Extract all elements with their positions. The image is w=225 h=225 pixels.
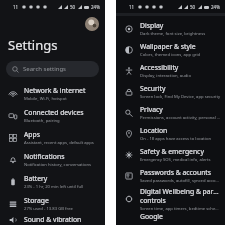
button[interactable]: Accessibility xyxy=(116,60,225,81)
staticText: Connected devices xyxy=(24,108,84,117)
staticText: Notification history, conversations xyxy=(24,162,92,168)
staticText: 11 xyxy=(13,4,19,10)
staticText: Battery xyxy=(24,174,48,183)
button[interactable]: Search settings xyxy=(6,61,99,77)
staticText: Emergency SOS, medical info, alerts xyxy=(140,157,211,163)
button[interactable]: Safety & emergency xyxy=(116,144,225,165)
button[interactable]: Storage xyxy=(0,193,105,214)
staticText: 24% xyxy=(91,4,100,10)
staticText: Accessibility xyxy=(140,63,179,72)
staticText: Network & internet xyxy=(24,86,86,95)
staticText: Search settings xyxy=(23,65,66,73)
button[interactable]: Apps xyxy=(0,127,105,148)
staticText: 24% xyxy=(211,4,220,10)
button[interactable]: Network & internet xyxy=(0,83,105,104)
staticText: Storage xyxy=(24,196,49,205)
staticText: Security xyxy=(140,84,166,93)
staticText: Saved passwords, autofill, synced accoun… xyxy=(140,178,221,184)
staticText: Dark theme, font size, brightness xyxy=(140,31,206,37)
staticText: Notifications xyxy=(24,152,65,161)
staticText: Google xyxy=(140,212,163,221)
staticText: 50 xyxy=(70,4,76,10)
button[interactable]: Connected devices xyxy=(0,105,105,126)
button[interactable]: Wallpaper & style xyxy=(116,39,225,60)
staticText: controls xyxy=(140,196,166,205)
staticText: Mobile, Wi-Fi, hotspot xyxy=(24,96,67,102)
staticText: On - 18 apps have access to location xyxy=(140,136,212,142)
button[interactable]: Digital Wellbeing & parental xyxy=(116,186,225,212)
staticText: 23% - 1 hr, 20 min left until full xyxy=(24,184,84,190)
staticText: Bluetooth, pairing xyxy=(24,118,60,124)
staticText: Digital Wellbeing & parental xyxy=(140,187,221,196)
button[interactable]: Account xyxy=(85,17,99,31)
staticText: 50 xyxy=(190,4,196,10)
button[interactable]: Display xyxy=(116,18,225,39)
staticText: Privacy xyxy=(140,105,163,114)
staticText: Sound & vibration xyxy=(24,215,82,224)
button[interactable]: Notifications xyxy=(0,149,105,170)
staticText: Apps xyxy=(24,130,40,139)
staticText: Screen lock, Find My Device, app securit… xyxy=(140,94,221,100)
staticText: Location xyxy=(140,126,168,135)
staticText: Display xyxy=(140,21,164,30)
button[interactable]: Battery xyxy=(0,171,105,192)
staticText: Permissions, account activity, personal … xyxy=(140,115,221,121)
button[interactable]: Google xyxy=(116,212,225,222)
staticText: 11 xyxy=(129,4,135,10)
staticText: Assistant, recent apps, default apps xyxy=(24,140,94,146)
staticText: Colors, themed icons, app grid xyxy=(140,52,201,58)
staticText: Passwords & accounts xyxy=(140,168,212,177)
button[interactable]: Location xyxy=(116,123,225,144)
button[interactable]: Security xyxy=(116,81,225,102)
button[interactable]: Passwords & accounts xyxy=(116,165,225,186)
staticText: Display, interaction, audio xyxy=(140,73,191,79)
staticText: Settings xyxy=(8,36,58,54)
staticText: Screen time, app timers, bedtime schedul… xyxy=(140,206,221,212)
staticText: Wallpaper & style xyxy=(140,42,196,51)
staticText: Safety & emergency xyxy=(140,147,204,156)
button[interactable]: Privacy xyxy=(116,102,225,123)
staticText: 27% used - 13.83 GB free xyxy=(24,206,73,212)
button[interactable]: Sound & vibration xyxy=(0,215,105,225)
